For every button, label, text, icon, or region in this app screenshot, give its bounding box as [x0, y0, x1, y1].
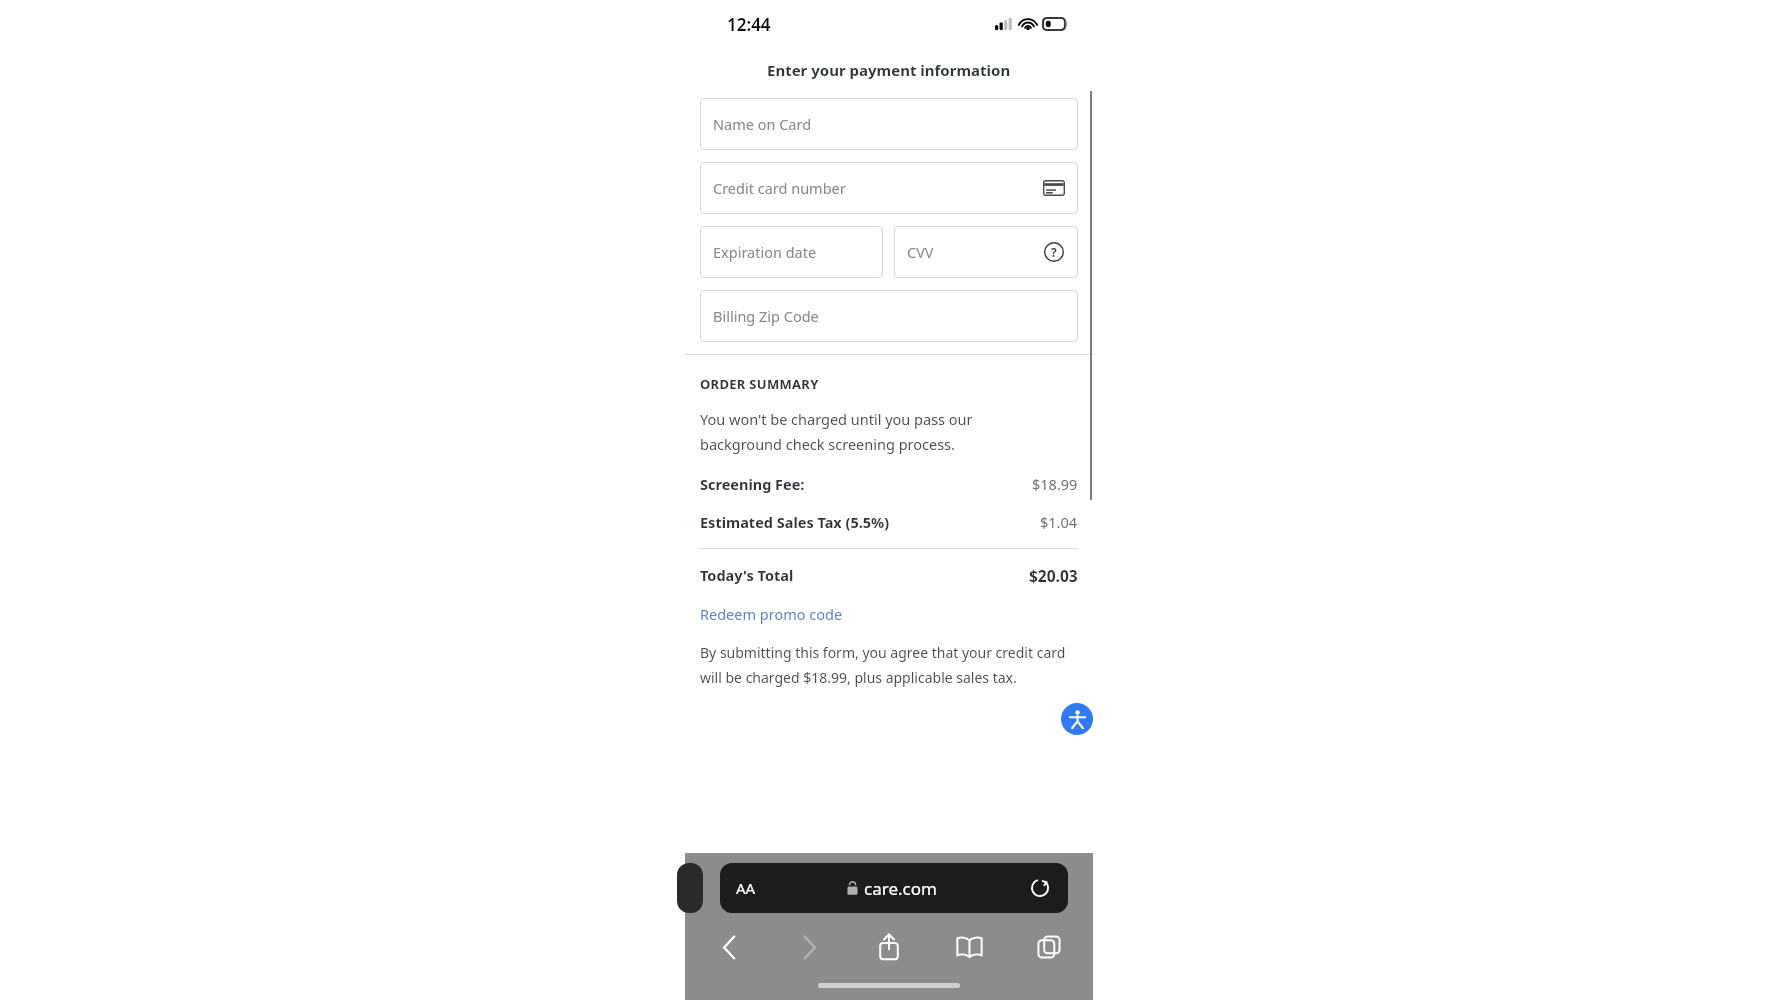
staticText: You won't be charged until you pass our … — [700, 409, 973, 454]
button[interactable]: Text size options — [720, 863, 1068, 913]
button[interactable]: Credit card number — [700, 162, 1078, 214]
button[interactable]: Name on Card — [700, 98, 1078, 150]
button[interactable]: Share — [865, 925, 913, 969]
staticText: $20.03 — [1029, 565, 1078, 586]
button[interactable]: Reload page — [1028, 876, 1052, 900]
button[interactable]: Back — [705, 925, 753, 969]
staticText: AA — [736, 878, 756, 898]
button[interactable]: Bookmarks — [945, 925, 993, 969]
staticText: care.com — [864, 877, 937, 900]
staticText: Today's Total — [700, 565, 794, 585]
staticText: Redeem promo code — [700, 604, 843, 624]
staticText: CVV — [907, 242, 1043, 262]
staticText: Billing Zip Code — [713, 306, 1065, 326]
staticText: 12:44 — [727, 13, 771, 36]
staticText: Screening Fee: — [700, 474, 805, 494]
button[interactable]: Accessibility options — [1061, 703, 1093, 735]
button[interactable]: Redeem promo code — [700, 604, 843, 624]
staticText: By submitting this form, you agree that … — [700, 643, 1066, 687]
staticText: $1.04 — [1040, 512, 1078, 532]
staticText: Expiration date — [713, 242, 870, 262]
staticText: ORDER SUMMARY — [700, 375, 819, 393]
button[interactable]: Expiration date — [700, 226, 883, 278]
button[interactable]: CVV — [894, 226, 1078, 278]
button[interactable]: What is CVV? — [1043, 241, 1065, 263]
staticText: Enter your payment information — [767, 60, 1011, 80]
staticText: Name on Card — [713, 114, 1065, 134]
staticText: Credit card number — [713, 178, 1043, 198]
button[interactable]: Forward — [785, 925, 833, 969]
button[interactable]: Tabs — [1025, 925, 1073, 969]
staticText: $18.99 — [1032, 474, 1078, 494]
staticText: ? — [1051, 244, 1057, 260]
button[interactable]: Billing Zip Code — [700, 290, 1078, 342]
staticText: Estimated Sales Tax (5.5%) — [700, 512, 890, 532]
